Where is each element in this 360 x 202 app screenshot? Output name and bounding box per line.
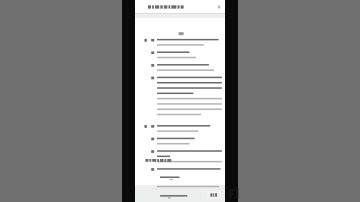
button[interactable] <box>135 18 225 185</box>
other: Watermark <box>228 187 237 198</box>
button[interactable]: Page indicator <box>207 191 221 199</box>
button[interactable]: Document title bar <box>135 0 225 13</box>
